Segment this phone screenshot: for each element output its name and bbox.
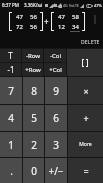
staticText: 47%	[94, 3, 102, 8]
staticText: 2	[31, 138, 37, 152]
button[interactable]: +Col	[44, 63, 66, 76]
staticText: 58	[72, 13, 79, 21]
staticText: -1	[7, 64, 15, 75]
button[interactable]: =	[68, 158, 103, 183]
button[interactable]: 9	[45, 77, 67, 104]
staticText: .	[10, 164, 13, 178]
staticText: 1	[8, 138, 14, 152]
staticText: 6	[53, 111, 59, 125]
staticText: 6:37 PM	[2, 2, 19, 8]
staticText: +	[44, 16, 49, 27]
staticText: 3	[53, 138, 59, 152]
staticText: 34	[72, 23, 79, 31]
staticText: 72	[16, 23, 23, 31]
button[interactable]: -1	[0, 63, 21, 76]
button[interactable]: 7	[0, 77, 22, 104]
staticText: ×	[83, 85, 89, 97]
button[interactable]: -Col	[44, 49, 66, 62]
staticText: 12	[58, 23, 65, 31]
staticText: 4G	[63, 3, 68, 8]
staticText: T	[8, 50, 13, 61]
button[interactable]: 4	[0, 105, 22, 131]
staticText: More	[79, 141, 92, 148]
button[interactable]: +Row	[22, 63, 43, 76]
staticText: -Col	[50, 52, 61, 60]
button[interactable]: Brackets	[67, 49, 103, 76]
button[interactable]: T	[0, 49, 21, 62]
button[interactable]: +/−	[45, 158, 67, 183]
button[interactable]: 6	[45, 105, 67, 131]
staticText: 3.36K/s	[24, 2, 40, 8]
button[interactable]: -Row	[22, 49, 43, 62]
button[interactable]: +	[68, 105, 103, 131]
staticText: 47	[58, 13, 65, 21]
button[interactable]: 1	[0, 132, 22, 157]
button[interactable]: 0	[23, 158, 44, 183]
staticText: +Row	[25, 66, 41, 74]
staticText: 8	[31, 84, 37, 98]
button[interactable]: 5	[23, 105, 44, 131]
staticText: -Row	[26, 52, 40, 60]
staticText: +/−	[48, 164, 64, 178]
staticText: +Col	[49, 66, 62, 74]
staticText: 9	[53, 84, 59, 98]
staticText: 4	[8, 111, 14, 125]
staticText: +	[83, 112, 89, 124]
button[interactable]: 3	[45, 132, 67, 157]
button[interactable]: More	[68, 132, 103, 157]
staticText: DELETE	[81, 39, 100, 46]
button[interactable]: ×	[68, 77, 103, 104]
staticText: 0	[31, 164, 37, 178]
button[interactable]: .	[0, 158, 22, 183]
staticText: 56	[30, 23, 37, 31]
staticText: VoLTE	[69, 3, 79, 8]
staticText: =	[83, 165, 89, 177]
staticText: 56	[30, 13, 37, 21]
button[interactable]: 8	[23, 77, 44, 104]
staticText: 47	[16, 13, 23, 21]
staticText: 7	[8, 84, 14, 98]
button[interactable]: DELETE	[81, 39, 100, 46]
button[interactable]: 2	[23, 132, 44, 157]
staticText: 5	[31, 111, 37, 125]
